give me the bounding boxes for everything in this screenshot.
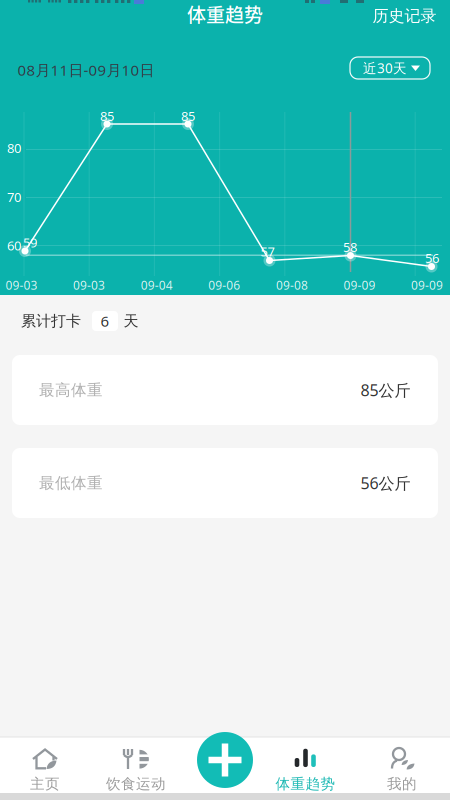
staticText: 85 <box>100 107 114 125</box>
staticText: 饮食运动 <box>106 775 166 793</box>
staticText: 57 <box>260 243 274 260</box>
staticText: 59 <box>23 234 37 251</box>
staticText: 累计打卡 <box>21 312 81 330</box>
staticText: 体重趋势 <box>187 0 263 28</box>
staticText: 主页 <box>30 775 60 793</box>
staticText: 08月11日-09月10日 <box>17 60 154 80</box>
staticText: 最高体重 <box>39 380 103 400</box>
staticText: 最低体重 <box>39 473 103 493</box>
staticText: 09-08 <box>276 277 308 293</box>
staticText: 09-03 <box>5 277 37 293</box>
staticText: 85 <box>181 107 195 125</box>
staticText: 56公斤 <box>360 472 410 494</box>
button[interactable] <box>195 730 255 790</box>
staticText: 历史记录 <box>372 6 436 26</box>
staticText: 60 <box>7 237 21 254</box>
staticText: 56 <box>425 249 439 267</box>
button[interactable]: 饮食运动 <box>91 737 181 795</box>
staticText: 58 <box>343 238 357 256</box>
staticText: 09-03 <box>73 277 105 293</box>
staticText: 85公斤 <box>360 379 410 401</box>
staticText: 09-09 <box>411 277 443 293</box>
button[interactable]: 我的 <box>348 737 450 795</box>
staticText: 80 <box>7 139 21 157</box>
button[interactable]: 近30天 <box>350 57 430 79</box>
button[interactable]: 主页 <box>0 737 90 795</box>
staticText: 近30天 <box>363 59 407 77</box>
button[interactable]: 历史记录 <box>359 2 449 30</box>
staticText: 09-09 <box>343 277 375 293</box>
staticText: 6 <box>100 311 109 331</box>
staticText: 天 <box>123 312 138 330</box>
staticText: 09-06 <box>208 277 240 293</box>
staticText: 09-04 <box>141 277 173 293</box>
staticText: 70 <box>7 188 21 206</box>
staticText: 我的 <box>387 775 417 793</box>
staticText: 体重趋势 <box>275 775 335 793</box>
button[interactable]: 体重趋势 <box>262 737 346 795</box>
